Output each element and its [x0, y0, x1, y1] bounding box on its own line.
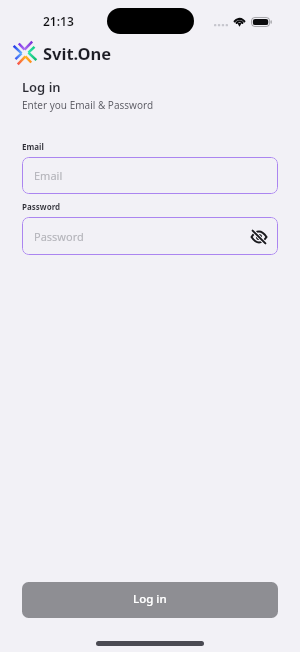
- staticText: Svit.One: [43, 42, 112, 64]
- staticText: Email: [34, 168, 63, 183]
- staticText: Enter you Email & Password: [22, 98, 154, 112]
- staticText: Log in: [133, 591, 167, 607]
- button[interactable]: Email: [22, 157, 278, 194]
- staticText: Email: [22, 141, 44, 152]
- staticText: 21:13: [43, 13, 74, 29]
- button[interactable]: Password: [22, 217, 278, 255]
- staticText: Log in: [22, 78, 61, 96]
- staticText: Password: [22, 201, 61, 212]
- button[interactable]: Show password: [249, 226, 269, 246]
- button[interactable]: Log in: [22, 582, 278, 618]
- staticText: Password: [34, 229, 84, 244]
